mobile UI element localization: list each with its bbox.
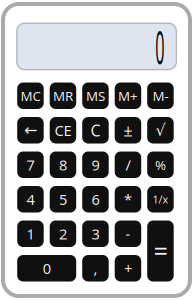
staticText: C [90,120,100,141]
staticText: CE [54,120,71,140]
button[interactable]: 8 [50,151,76,178]
staticText: - [125,224,130,243]
button[interactable]: ± [115,117,141,143]
button[interactable]: MR [50,82,76,109]
staticText: MS [86,87,105,105]
button[interactable]: 1 [17,220,44,247]
staticText: 4 [26,189,34,209]
button[interactable]: * [115,186,141,212]
button[interactable]: + [115,255,141,281]
button[interactable]: √ [147,117,174,143]
button[interactable]: % [147,151,174,178]
staticText: 2 [59,224,67,243]
staticText: √ [155,121,165,139]
staticText: ± [123,120,132,141]
staticText: M- [152,87,168,105]
button[interactable]: M+ [115,82,141,109]
staticText: 0 [147,17,173,77]
button[interactable]: 3 [82,220,109,247]
button[interactable]: = [147,220,174,281]
staticText: 1 [26,224,34,243]
staticText: = [153,234,167,268]
button[interactable]: 9 [82,151,109,178]
button[interactable]: MC [17,82,44,109]
staticText: ← [24,121,37,139]
staticText: 3 [91,224,99,243]
staticText: 5 [59,189,67,209]
staticText: , [93,258,97,278]
staticText: 9 [91,155,99,174]
button[interactable]: MS [82,82,109,109]
staticText: / [125,155,130,174]
staticText: MR [53,87,73,105]
staticText: M+ [118,87,138,105]
button[interactable]: 2 [50,220,76,247]
staticText: MC [20,87,40,105]
staticText: % [155,156,166,174]
staticText: 8 [59,155,67,174]
staticText: 1/x [152,192,168,206]
button[interactable]: 4 [17,186,44,212]
button[interactable]: / [115,151,141,178]
staticText: * [124,189,132,209]
staticText: 0 [43,258,51,278]
button[interactable]: - [115,220,141,247]
button[interactable]: CE [50,117,76,143]
button[interactable]: 5 [50,186,76,212]
staticText: + [124,258,132,278]
staticText: 7 [26,155,34,174]
staticText: 6 [91,189,99,209]
button[interactable]: 6 [82,186,109,212]
button[interactable]: M- [147,82,174,109]
button[interactable]: 1/x [147,186,174,212]
button[interactable]: , [82,255,109,281]
button[interactable]: 7 [17,151,44,178]
button[interactable]: C [82,117,109,143]
button[interactable]: 0 [17,255,76,281]
button[interactable]: ← [17,117,44,143]
